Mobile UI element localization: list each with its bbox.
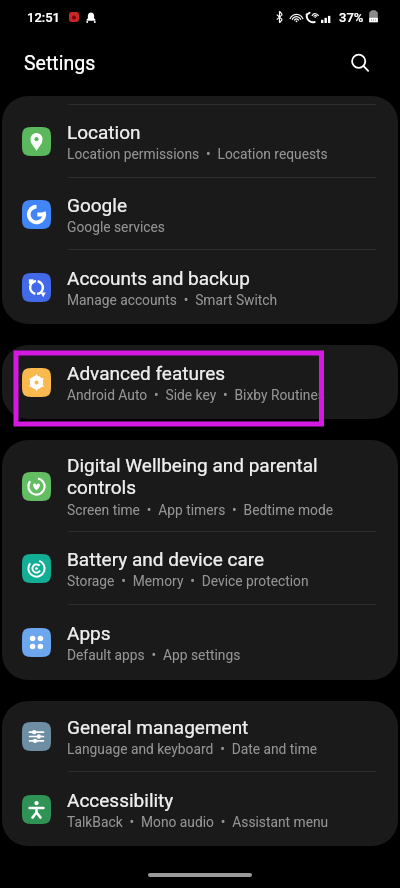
staticText: Battery and device care: [67, 548, 265, 570]
staticText: 12:51: [27, 10, 60, 25]
button[interactable]: Advanced features: [2, 345, 398, 419]
staticText: Screen time • App timers • Bedtime mode: [67, 502, 334, 518]
button[interactable]: General management: [2, 701, 398, 772]
staticText: Accounts and backup: [67, 267, 250, 289]
staticText: 37%: [339, 10, 364, 25]
staticText: Digital Wellbeing and parental controls: [67, 454, 318, 499]
button[interactable]: Battery and device care: [2, 532, 398, 605]
staticText: Language and keyboard • Date and time: [67, 741, 318, 757]
staticText: General management: [67, 716, 249, 738]
button[interactable]: Google: [2, 178, 398, 250]
staticText: Advanced features: [67, 362, 226, 384]
button[interactable]: Accessibility: [2, 772, 398, 846]
staticText: Apps: [67, 622, 111, 644]
staticText: TalkBack • Mono audio • Assistant menu: [67, 814, 329, 830]
staticText: Location: [67, 121, 141, 143]
staticText: Google services: [67, 219, 165, 235]
staticText: Android Auto • Side key • Bixby Routines: [67, 387, 325, 403]
staticText: Accessibility: [67, 789, 174, 811]
button[interactable]: Accounts and backup: [2, 250, 398, 324]
button[interactable]: Search: [342, 45, 378, 81]
staticText: Default apps • App settings: [67, 647, 241, 663]
staticText: Google: [67, 194, 127, 216]
staticText: Manage accounts • Smart Switch: [67, 292, 278, 308]
staticText: Location permissions • Location requests: [67, 146, 328, 162]
button[interactable]: Location: [2, 105, 398, 178]
staticText: Storage • Memory • Device protection: [67, 573, 309, 589]
staticText: Settings: [24, 52, 96, 75]
button[interactable]: Digital Wellbeing and parental controls: [2, 440, 398, 532]
button[interactable]: Apps: [2, 605, 398, 680]
